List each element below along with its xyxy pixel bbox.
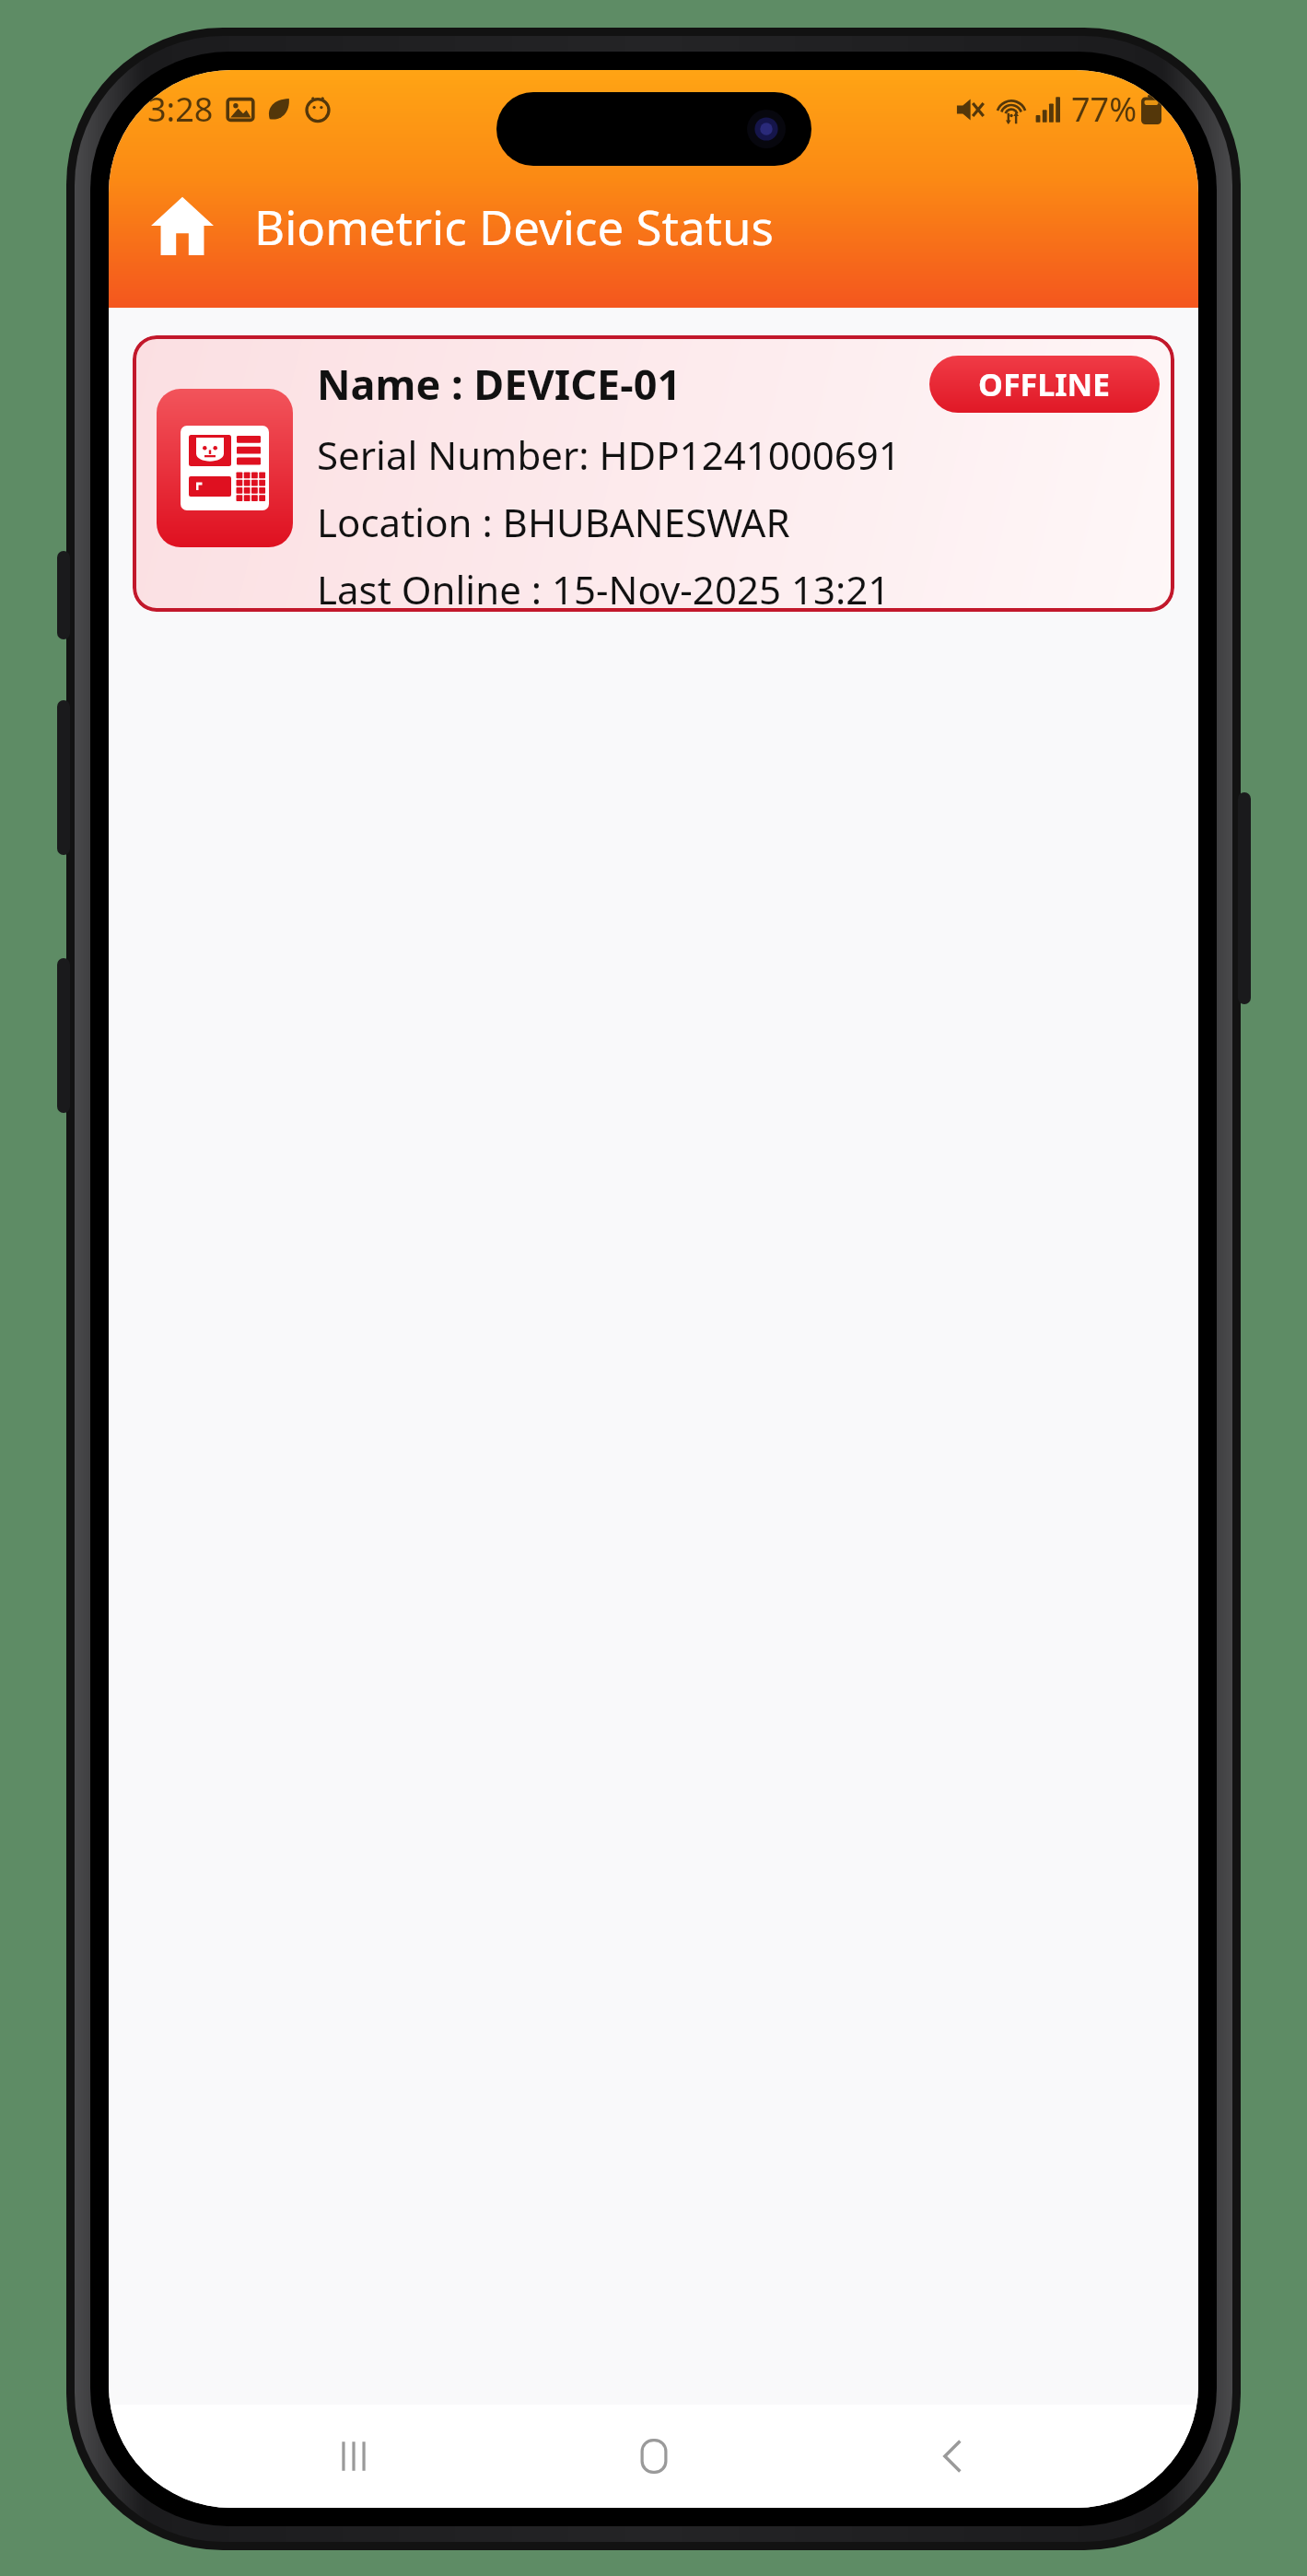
staticText: Biometric Device Status: [254, 194, 774, 258]
staticText: Location : BHUBANESWAR: [317, 496, 790, 548]
staticText: Serial Number: HDP1241000691: [317, 428, 901, 481]
button[interactable]: Back: [898, 2405, 1009, 2508]
staticText: 77%: [1071, 87, 1138, 132]
staticText: 3:28: [147, 87, 214, 132]
button[interactable]: Name : DEVICE-01: [133, 335, 1174, 612]
staticText: Last Online : 15-Nov-2025 13:21: [317, 563, 891, 612]
button[interactable]: Recent apps: [298, 2405, 409, 2508]
button[interactable]: Home: [133, 176, 232, 275]
button[interactable]: OFFLINE: [929, 356, 1160, 413]
button[interactable]: Home: [599, 2405, 709, 2508]
staticText: Name : DEVICE-01: [317, 356, 682, 412]
staticText: OFFLINE: [978, 363, 1111, 405]
